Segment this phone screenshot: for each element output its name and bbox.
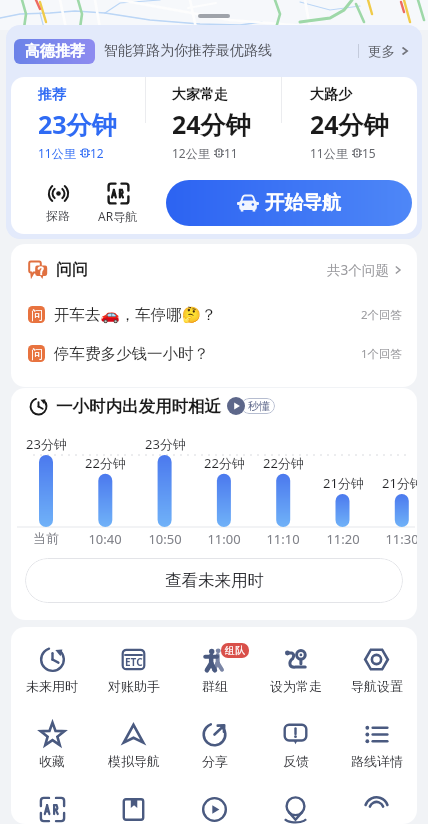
staticText: 22分钟 [204,454,245,472]
staticText: 开车去🚗，车停哪🤔？ [54,305,217,325]
staticText: 大路少 [310,86,352,104]
staticText: 问 [31,346,43,361]
button[interactable]: 大路少 [282,77,417,171]
button[interactable]: 高德推荐 [6,25,422,77]
button[interactable]: 问 [28,334,403,373]
staticText: 停车费多少钱一小时？ [54,344,209,364]
button[interactable]: AR导航 [93,182,143,224]
staticText: ETC [125,655,143,669]
button[interactable]: 问问 [28,244,403,295]
staticText: 22分钟 [263,454,304,472]
staticText: 探路 [46,208,70,223]
button[interactable]: 停车场 [255,796,336,824]
button[interactable]: 分享 [174,721,255,769]
staticText: 路线详情 [351,753,403,769]
button[interactable]: 模拟导航 [93,721,174,769]
button[interactable]: 播报 [174,796,255,824]
staticText: 11:20 [326,530,360,548]
staticText: 21分钟 [382,474,417,492]
staticText: 23分钟 [145,435,186,453]
button[interactable]: 未来用时 [11,646,93,694]
staticText: 群组 [202,678,228,694]
button[interactable]: 秒懂 [227,397,275,415]
button[interactable]: 探路 [33,182,83,223]
button[interactable]: AR实景 [11,796,93,824]
staticText: 推荐 [38,86,66,104]
staticText: 11 [224,145,238,161]
staticText: 模拟导航 [108,753,160,769]
staticText: 智能算路为你推荐最优路线 [104,42,272,60]
staticText: 导航设置 [351,678,403,694]
button[interactable]: 路线详情 [336,721,417,769]
staticText: 分享 [202,753,228,769]
button[interactable]: 推荐 [11,77,147,171]
staticText: 查看未来用时 [165,570,264,591]
staticText: 11:00 [207,530,241,548]
staticText: 开始导航 [265,191,341,215]
staticText: 22分钟 [85,454,126,472]
staticText: 反馈 [283,753,309,769]
staticText: 10:50 [148,530,182,548]
staticText: 11公里 [38,145,76,161]
staticText: 11:30 [385,530,417,548]
staticText: 11公里 [310,145,348,161]
staticText: 大家常走 [172,86,228,104]
staticText: 23分钟 [38,107,117,141]
staticText: 12 [90,145,104,161]
button[interactable]: 大家常走 [147,77,282,171]
staticText: 11:10 [266,530,300,548]
staticText: 2个回答 [361,307,403,323]
staticText: AR导航 [98,208,138,224]
button[interactable]: 路书 [93,796,174,824]
staticText: 24分钟 [310,107,389,141]
staticText: 问 [31,307,43,322]
staticText: 共3个问题 [327,261,389,279]
staticText: 未来用时 [26,678,78,694]
staticText: 对账助手 [108,678,160,694]
staticText: 高德推荐 [25,42,85,61]
button[interactable]: 收藏 [11,721,93,769]
staticText: 秒懂 [248,399,270,413]
staticText: 设为常走 [270,678,322,694]
staticText: 一小时内出发用时相近 [56,396,221,417]
staticText: 组队 [225,644,245,657]
staticText: 12公里 [172,145,210,161]
button[interactable]: 导航设置 [336,646,417,694]
button[interactable]: 查看未来用时 [25,558,403,603]
staticText: 23分钟 [26,435,67,453]
staticText: 收藏 [39,753,65,769]
staticText: 10:40 [88,530,122,548]
button[interactable]: ADAS [336,796,417,824]
staticText: 24分钟 [172,107,251,141]
button[interactable]: 反馈 [255,721,336,769]
staticText: 更多 [368,43,395,60]
button[interactable]: 群组 [174,646,255,694]
button[interactable]: 设为常走 [255,646,336,694]
button[interactable]: 对账助手 [93,646,174,694]
staticText: 问问 [56,260,88,280]
staticText: 15 [362,145,376,161]
button[interactable]: 问 [28,295,403,334]
staticText: 1个回答 [361,346,403,362]
button[interactable]: 开始导航 [166,180,412,226]
staticText: 21分钟 [323,474,364,492]
staticText: 当前 [33,530,59,546]
